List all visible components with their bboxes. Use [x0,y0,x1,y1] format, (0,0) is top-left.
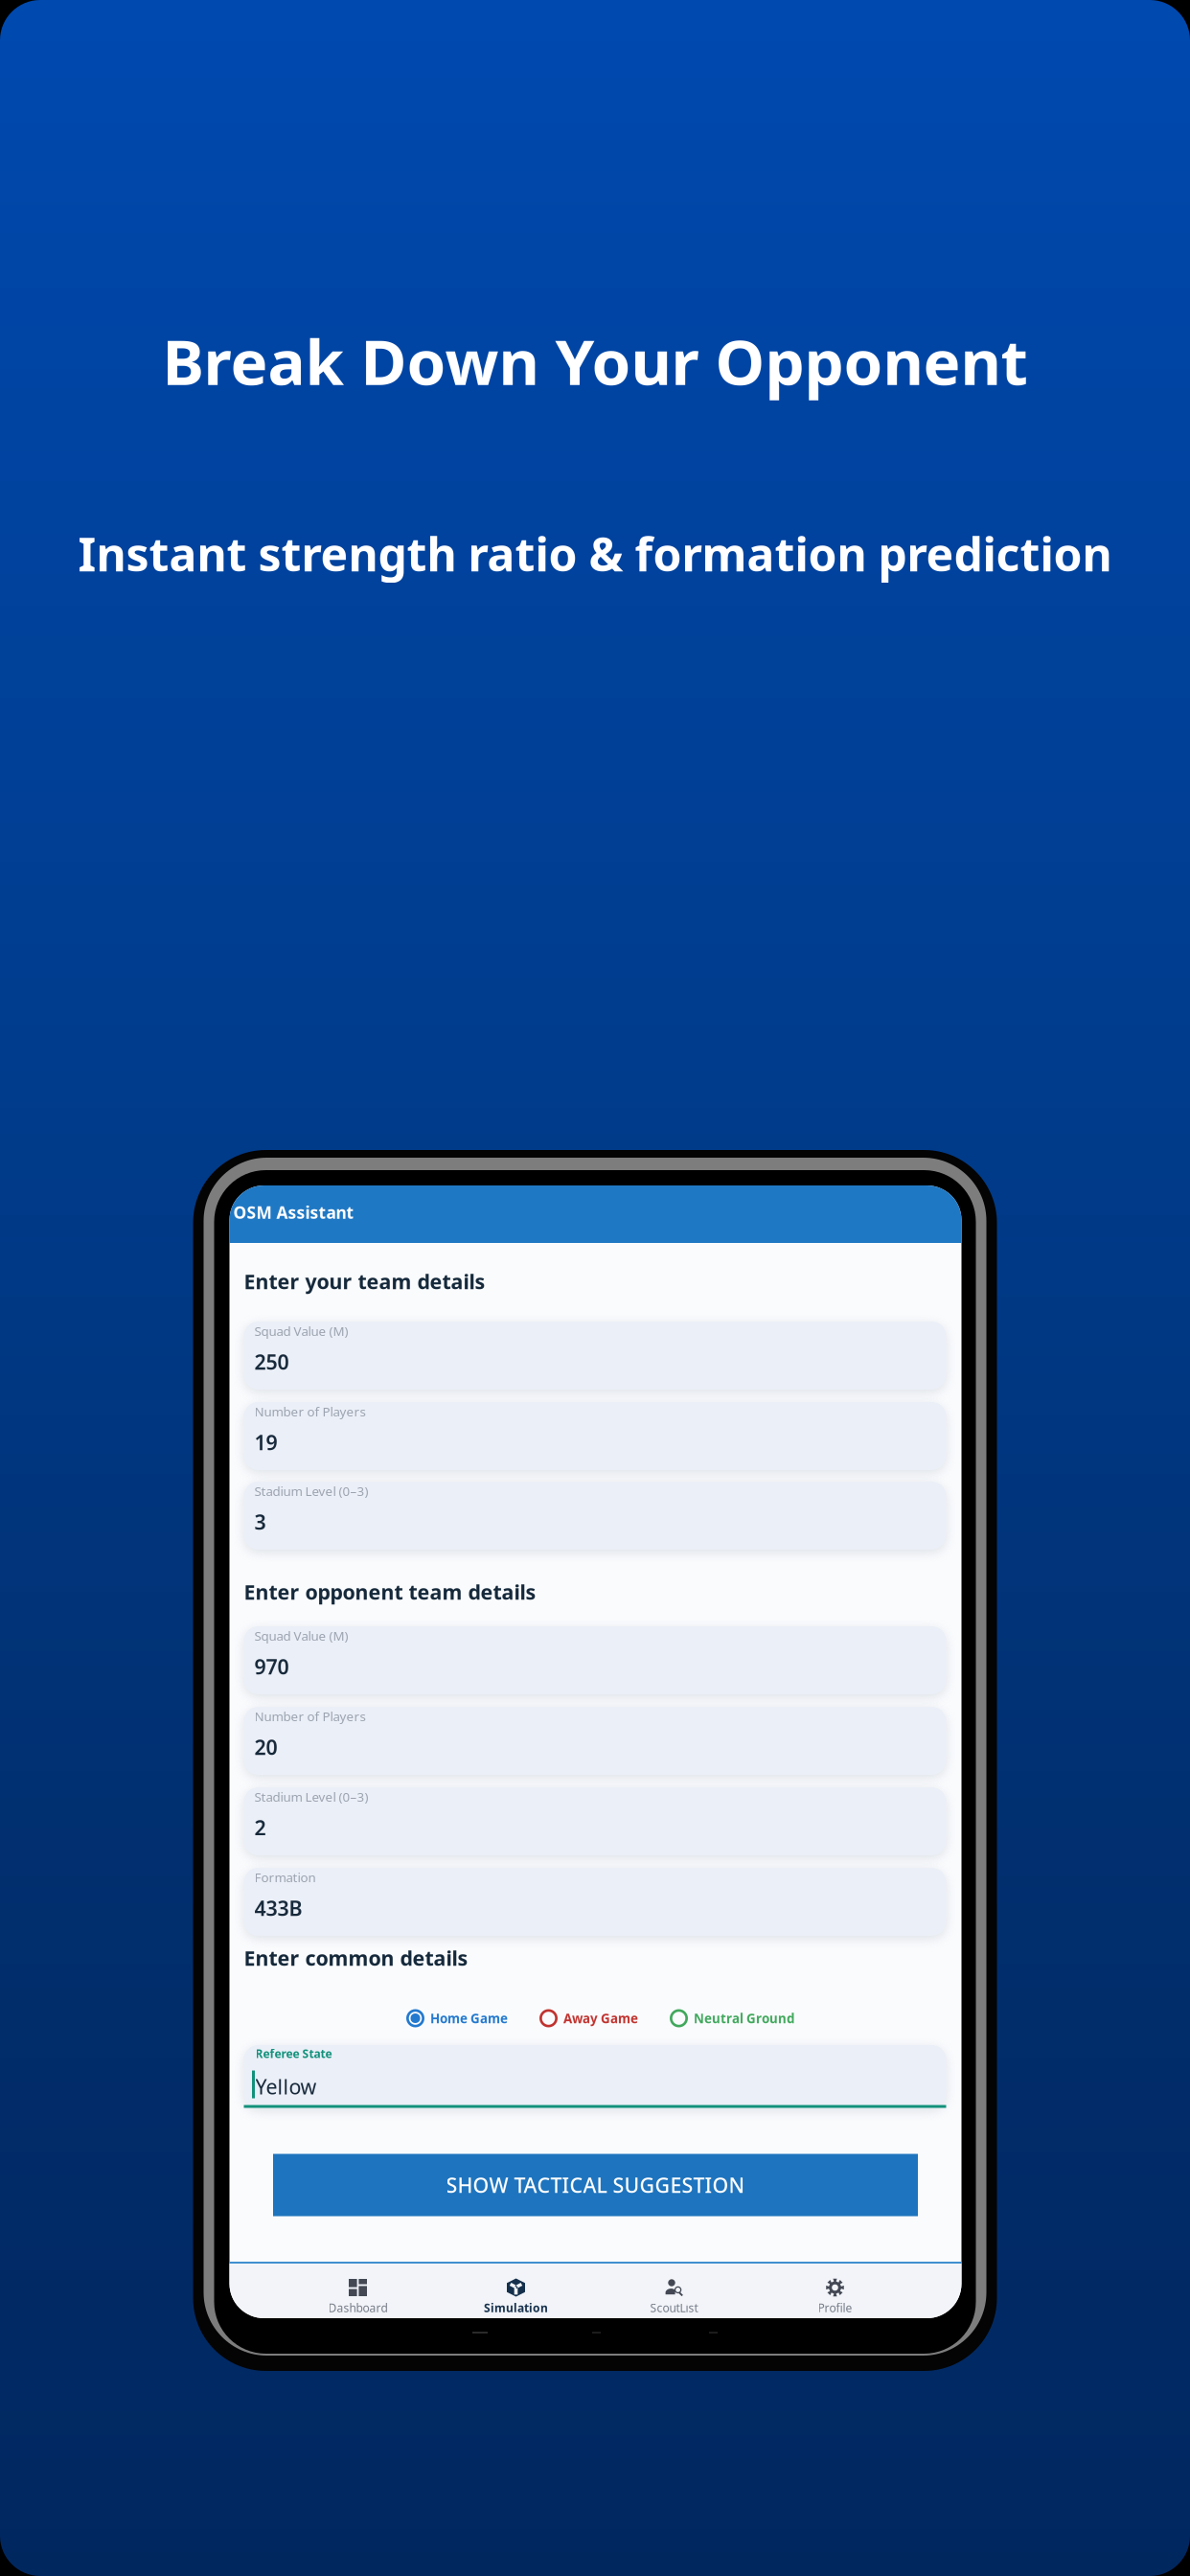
staticText: Neutral Ground [694,2010,794,2027]
staticText: Simulation [484,2300,548,2315]
staticText: 433B [254,1894,302,1921]
staticText: OSM Assistant [233,1201,354,1223]
button[interactable]: Neutral Ground [670,2009,794,2027]
staticText: Instant strength ratio & formation predi… [78,523,1112,584]
staticText: Referee State [255,2046,332,2061]
staticText: Enter common details [244,1944,468,1971]
staticText: Stadium Level (0–3) [254,1788,368,1805]
staticText: Number of Players [254,1708,366,1725]
staticText: Number of Players [254,1403,366,1420]
staticText: SHOW TACTICAL SUGGESTION [446,2171,745,2199]
staticText: 250 [254,1348,289,1375]
staticText: Enter opponent team details [244,1578,536,1605]
button[interactable]: Simulation [437,2264,595,2318]
staticText: Formation [254,1869,316,1886]
staticText: Home Game [430,2010,508,2027]
staticText: 19 [254,1429,277,1456]
staticText: Dashboard [328,2300,388,2315]
staticText: Away Game [563,2010,638,2027]
staticText: Yellow [255,2073,317,2100]
staticText: Enter your team details [244,1268,485,1295]
staticText: 2 [254,1814,266,1841]
button[interactable]: Home Game [406,2009,508,2027]
button[interactable]: Dashboard [279,2264,437,2318]
button[interactable]: SHOW TACTICAL SUGGESTION [273,2154,918,2216]
staticText: Profile [818,2300,852,2315]
button[interactable]: Profile [756,2264,914,2318]
staticText: 20 [254,1733,277,1760]
staticText: ScoutList [650,2300,698,2315]
staticText: Break Down Your Opponent [162,319,1028,402]
staticText: Squad Value (M) [254,1627,348,1644]
staticText: 970 [254,1653,289,1680]
staticText: 3 [254,1508,266,1535]
button[interactable]: Away Game [539,2009,638,2027]
button[interactable]: ScoutList [595,2264,753,2318]
staticText: Stadium Level (0–3) [254,1483,368,1500]
staticText: Squad Value (M) [254,1322,348,1339]
